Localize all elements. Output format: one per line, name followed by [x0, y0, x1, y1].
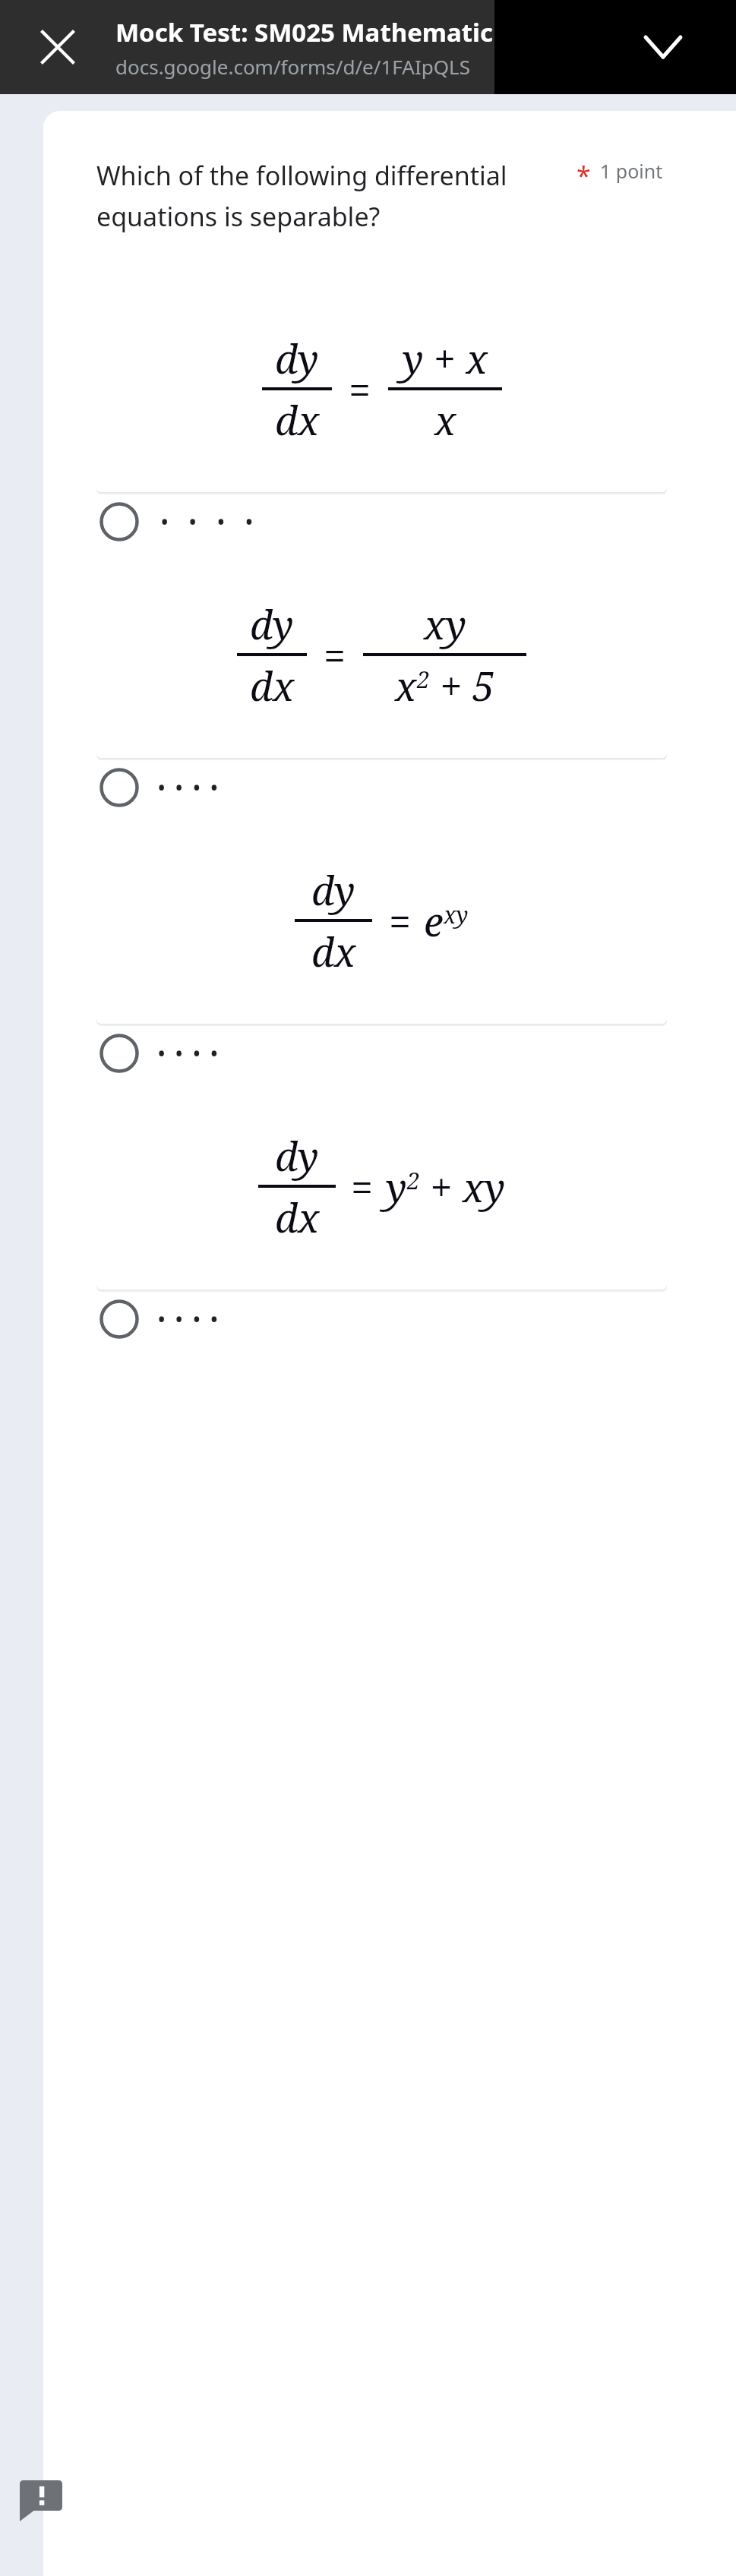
- staticText: 2: [417, 664, 430, 695]
- staticText: x: [434, 393, 456, 447]
- staticText: dx: [311, 924, 356, 978]
- staticText: • • • •: [157, 772, 220, 803]
- staticText: + xy: [420, 1160, 505, 1214]
- staticText: 1 point: [600, 158, 663, 184]
- button[interactable]: • • • •: [96, 1290, 667, 1349]
- staticText: dy: [275, 331, 319, 385]
- button[interactable]: Expand: [633, 17, 693, 77]
- staticText: Mock Test: SM025 Mathematic: [115, 15, 494, 49]
- staticText: • • • •: [160, 507, 261, 538]
- button[interactable]: Close: [30, 20, 85, 74]
- staticText: + 5: [430, 658, 495, 712]
- staticText: x: [395, 658, 417, 712]
- staticText: dy: [250, 597, 294, 651]
- staticText: xy: [444, 899, 469, 930]
- staticText: *: [576, 158, 591, 193]
- staticText: y + x: [403, 331, 488, 385]
- staticText: docs.google.com/forms/d/e/1FAIpQLS: [115, 53, 470, 80]
- button[interactable]: • • • •: [96, 492, 667, 551]
- button[interactable]: • • • •: [96, 1024, 667, 1083]
- staticText: e: [424, 894, 444, 948]
- staticText: y: [386, 1160, 407, 1214]
- staticText: =: [349, 362, 371, 416]
- staticText: Which of the following differential equa…: [96, 158, 567, 234]
- staticText: dx: [250, 658, 295, 712]
- staticText: dx: [275, 393, 320, 447]
- staticText: 2: [407, 1165, 420, 1196]
- staticText: dy: [275, 1129, 319, 1182]
- button[interactable]: Report a problem: [20, 2480, 62, 2521]
- button[interactable]: • • • •: [96, 758, 667, 817]
- staticText: • • • •: [157, 1038, 220, 1069]
- staticText: dx: [275, 1190, 320, 1244]
- staticText: dy: [311, 863, 355, 917]
- staticText: =: [351, 1160, 374, 1214]
- staticText: xy: [424, 597, 466, 651]
- staticText: =: [324, 628, 346, 682]
- staticText: • • • •: [157, 1304, 220, 1335]
- staticText: =: [389, 894, 412, 948]
